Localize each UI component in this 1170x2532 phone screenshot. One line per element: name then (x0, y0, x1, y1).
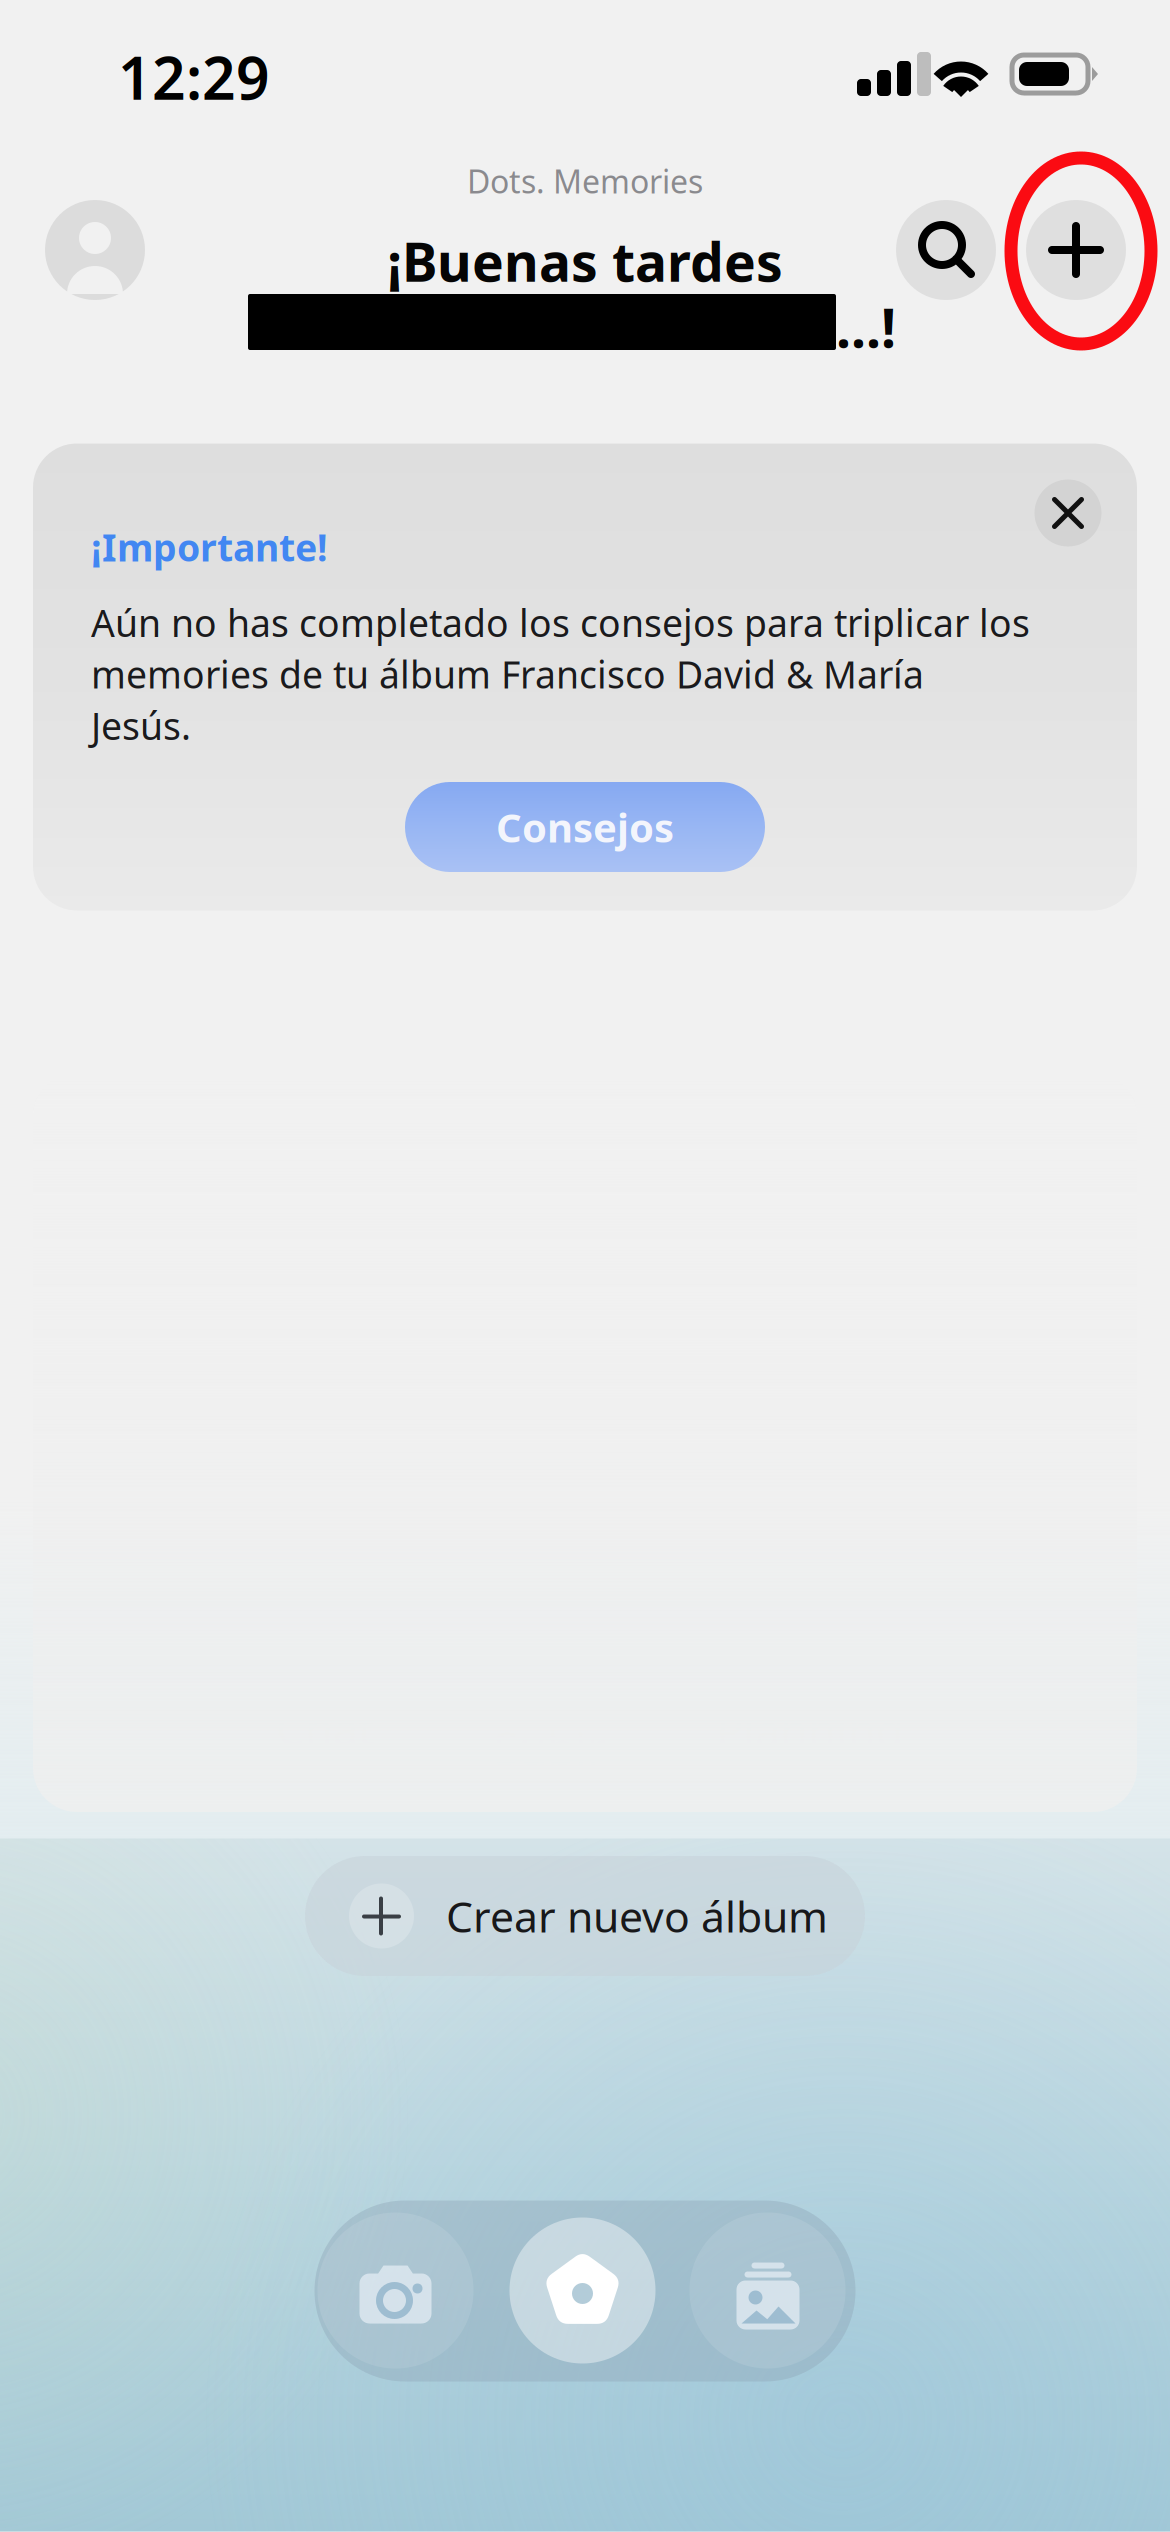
button[interactable]: Cerrar (1034, 479, 1102, 547)
staticText: Aún no has completado los consejos para … (91, 598, 1030, 750)
button[interactable]: Inicio (507, 2215, 657, 2365)
staticText: Consejos (496, 800, 674, 853)
staticText: ¡Buenas tardes (387, 226, 783, 296)
button[interactable]: Galería (692, 2215, 842, 2365)
button[interactable]: Buscar (896, 200, 996, 300)
staticText: Dots. Memories (467, 160, 703, 202)
staticText: Crear nuevo álbum (446, 1888, 828, 1944)
button[interactable]: Consejos (405, 782, 765, 872)
button[interactable]: Añadir (1026, 200, 1126, 300)
button[interactable]: Crear nuevo álbum (305, 1856, 865, 1976)
staticText: ¡Importante! (91, 522, 328, 572)
button[interactable]: Cámara (320, 2215, 470, 2365)
staticText: ...! (836, 292, 896, 362)
staticText: 12:29 (118, 38, 270, 116)
button[interactable]: Perfil (45, 200, 145, 300)
